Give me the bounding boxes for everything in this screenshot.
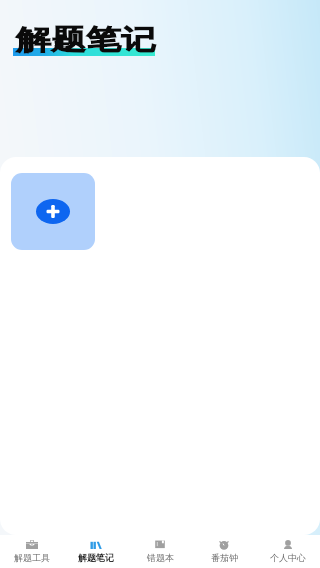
button[interactable]: 新建笔记 Add note	[11, 173, 95, 250]
staticText: 个人中心	[270, 552, 306, 563]
staticText: 解题笔记	[78, 552, 114, 563]
button[interactable]: 个人中心	[256, 535, 320, 568]
staticText: 番茄钟	[211, 552, 238, 563]
button[interactable]: 番茄钟	[192, 535, 256, 568]
staticText: 解题工具	[14, 552, 50, 563]
staticText: 解题笔记	[16, 22, 156, 56]
staticText: 错题本	[147, 552, 174, 563]
button[interactable]: 错题本	[128, 535, 192, 568]
button[interactable]: 解题笔记	[64, 535, 128, 568]
button[interactable]: 解题工具	[0, 535, 64, 568]
